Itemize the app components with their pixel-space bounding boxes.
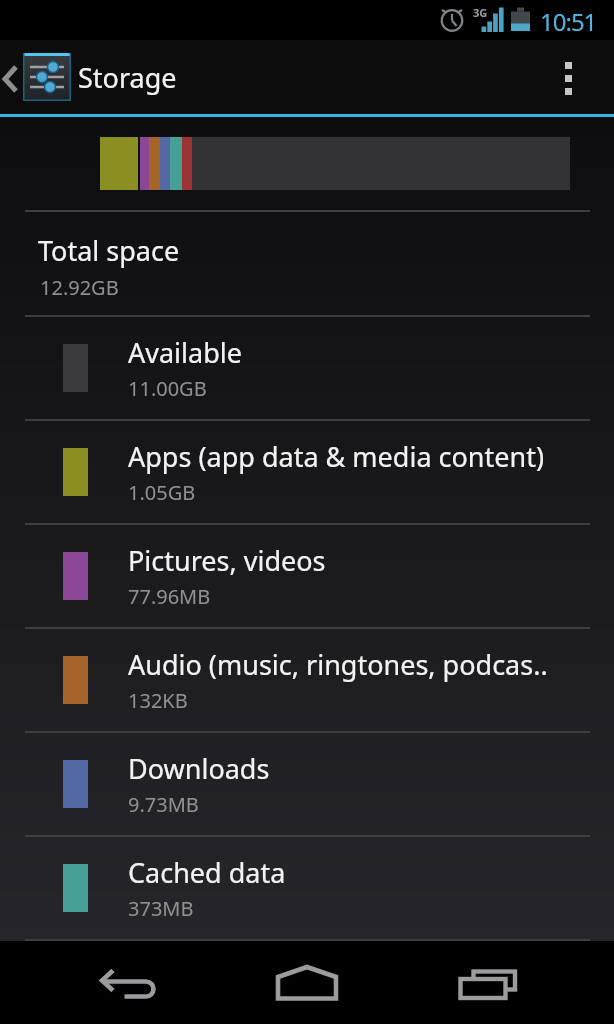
staticText: 9.73MB (128, 791, 199, 818)
staticText: 11.00GB (128, 375, 207, 402)
button[interactable]: Total space (0, 212, 614, 315)
staticText: Cached data (128, 854, 286, 891)
button[interactable]: Pictures, videos (0, 525, 614, 627)
staticText: Downloads (128, 750, 270, 787)
staticText: Pictures, videos (128, 542, 326, 579)
button[interactable] (560, 60, 584, 84)
staticText: 1.05GB (128, 479, 196, 506)
staticText: Available (128, 334, 242, 371)
staticText: 132KB (128, 687, 188, 714)
button[interactable]: Cached data (0, 837, 614, 939)
staticText: 12.92GB (40, 274, 119, 301)
staticText: 373MB (128, 895, 194, 922)
button[interactable] (413, 941, 563, 1024)
staticText: Total space (38, 232, 180, 269)
staticText: Audio (music, ringtones, podcas.. (128, 646, 548, 683)
staticText: 77.96MB (128, 583, 211, 610)
button[interactable] (53, 941, 203, 1024)
button[interactable]: Downloads (0, 733, 614, 835)
button[interactable]: Available (0, 317, 614, 419)
staticText: Apps (app data & media content) (128, 438, 545, 475)
staticText: Storage (78, 59, 177, 96)
button[interactable] (232, 941, 382, 1024)
button[interactable]: Apps (app data & media content) (0, 421, 614, 523)
button[interactable]: Audio (music, ringtones, podcas.. (0, 629, 614, 731)
button[interactable]: Storage (0, 40, 614, 114)
staticText: 10:51 (540, 5, 597, 38)
staticText: 3G (473, 5, 488, 20)
